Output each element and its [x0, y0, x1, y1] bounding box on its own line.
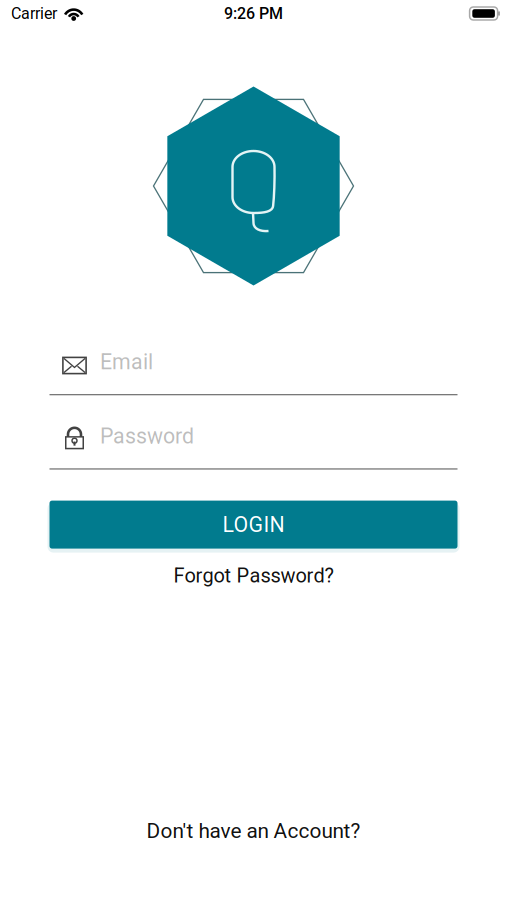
staticText: LOGIN [222, 512, 284, 537]
staticText: Email [100, 349, 153, 374]
staticText: Password [100, 424, 194, 449]
staticText: Carrier [11, 4, 57, 23]
staticText: 9:26 PM [224, 4, 283, 23]
staticText: Forgot Password? [173, 564, 333, 587]
button[interactable]: Forgot Password? [49, 560, 457, 592]
button[interactable]: Don't have an Account? [0, 814, 507, 848]
staticText: Don't have an Account? [146, 819, 360, 843]
button[interactable]: LOGIN [49, 501, 457, 549]
